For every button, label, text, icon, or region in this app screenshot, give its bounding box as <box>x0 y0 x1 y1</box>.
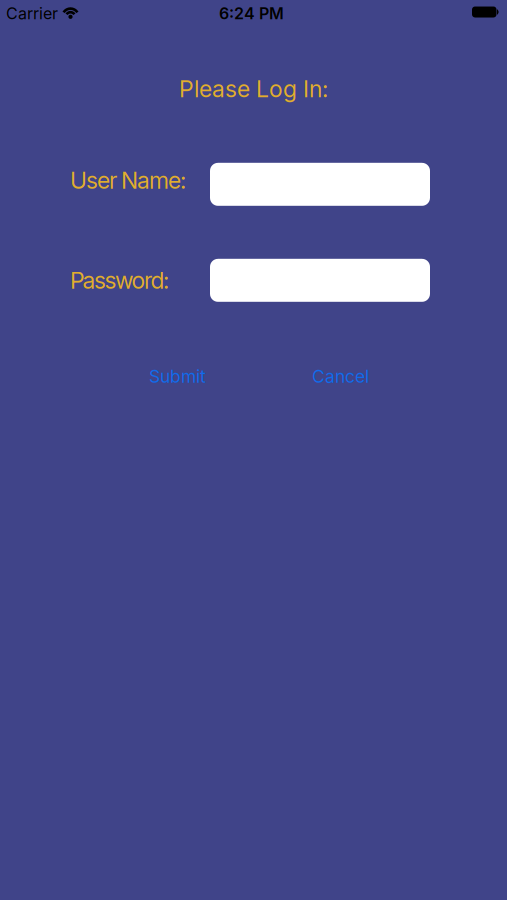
staticText: Cancel <box>312 366 369 387</box>
button[interactable]: Password: <box>210 259 430 302</box>
button[interactable]: Submit <box>149 366 206 387</box>
staticText: Please Log In: <box>179 75 328 103</box>
staticText: User Name: <box>70 166 186 194</box>
staticText: Submit <box>149 366 206 387</box>
button[interactable]: User Name: <box>210 159 430 202</box>
staticText: Carrier <box>6 4 58 23</box>
staticText: 6:24 PM <box>219 4 284 23</box>
staticText: Password: <box>70 266 169 294</box>
button[interactable]: Cancel <box>312 366 369 387</box>
